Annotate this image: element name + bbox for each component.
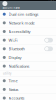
staticText: Bluetooth: [8, 46, 24, 51]
staticText: account name: [2, 6, 20, 10]
button[interactable]: Dual sim settings: [0, 10, 56, 19]
button[interactable]: Accessibility: [0, 27, 56, 36]
staticText: Dual sim settings: [8, 11, 38, 17]
staticText: 4:30: [48, 0, 55, 1]
button[interactable]: Bluetooth: [0, 45, 56, 53]
staticText: Status: [8, 87, 18, 92]
button[interactable]: Status: [0, 85, 56, 94]
staticText: Notifications: [8, 63, 29, 69]
staticText: Wi-Fi: [8, 37, 17, 43]
button[interactable]: Wi-Fi: [0, 36, 56, 45]
button[interactable]: Network mode: [0, 19, 56, 27]
button[interactable]: Display: [0, 53, 56, 62]
button[interactable]: Notifications: [0, 62, 56, 71]
staticText: Display: [8, 55, 21, 60]
staticText: Time: [8, 78, 17, 83]
staticText: Accessibility: [8, 29, 30, 34]
button[interactable]: Time: [0, 77, 56, 85]
staticText: Accounts: [8, 95, 24, 100]
button[interactable]: Accounts: [0, 94, 56, 100]
staticText: Network mode: [8, 20, 34, 25]
staticText: utility: [3, 72, 11, 75]
